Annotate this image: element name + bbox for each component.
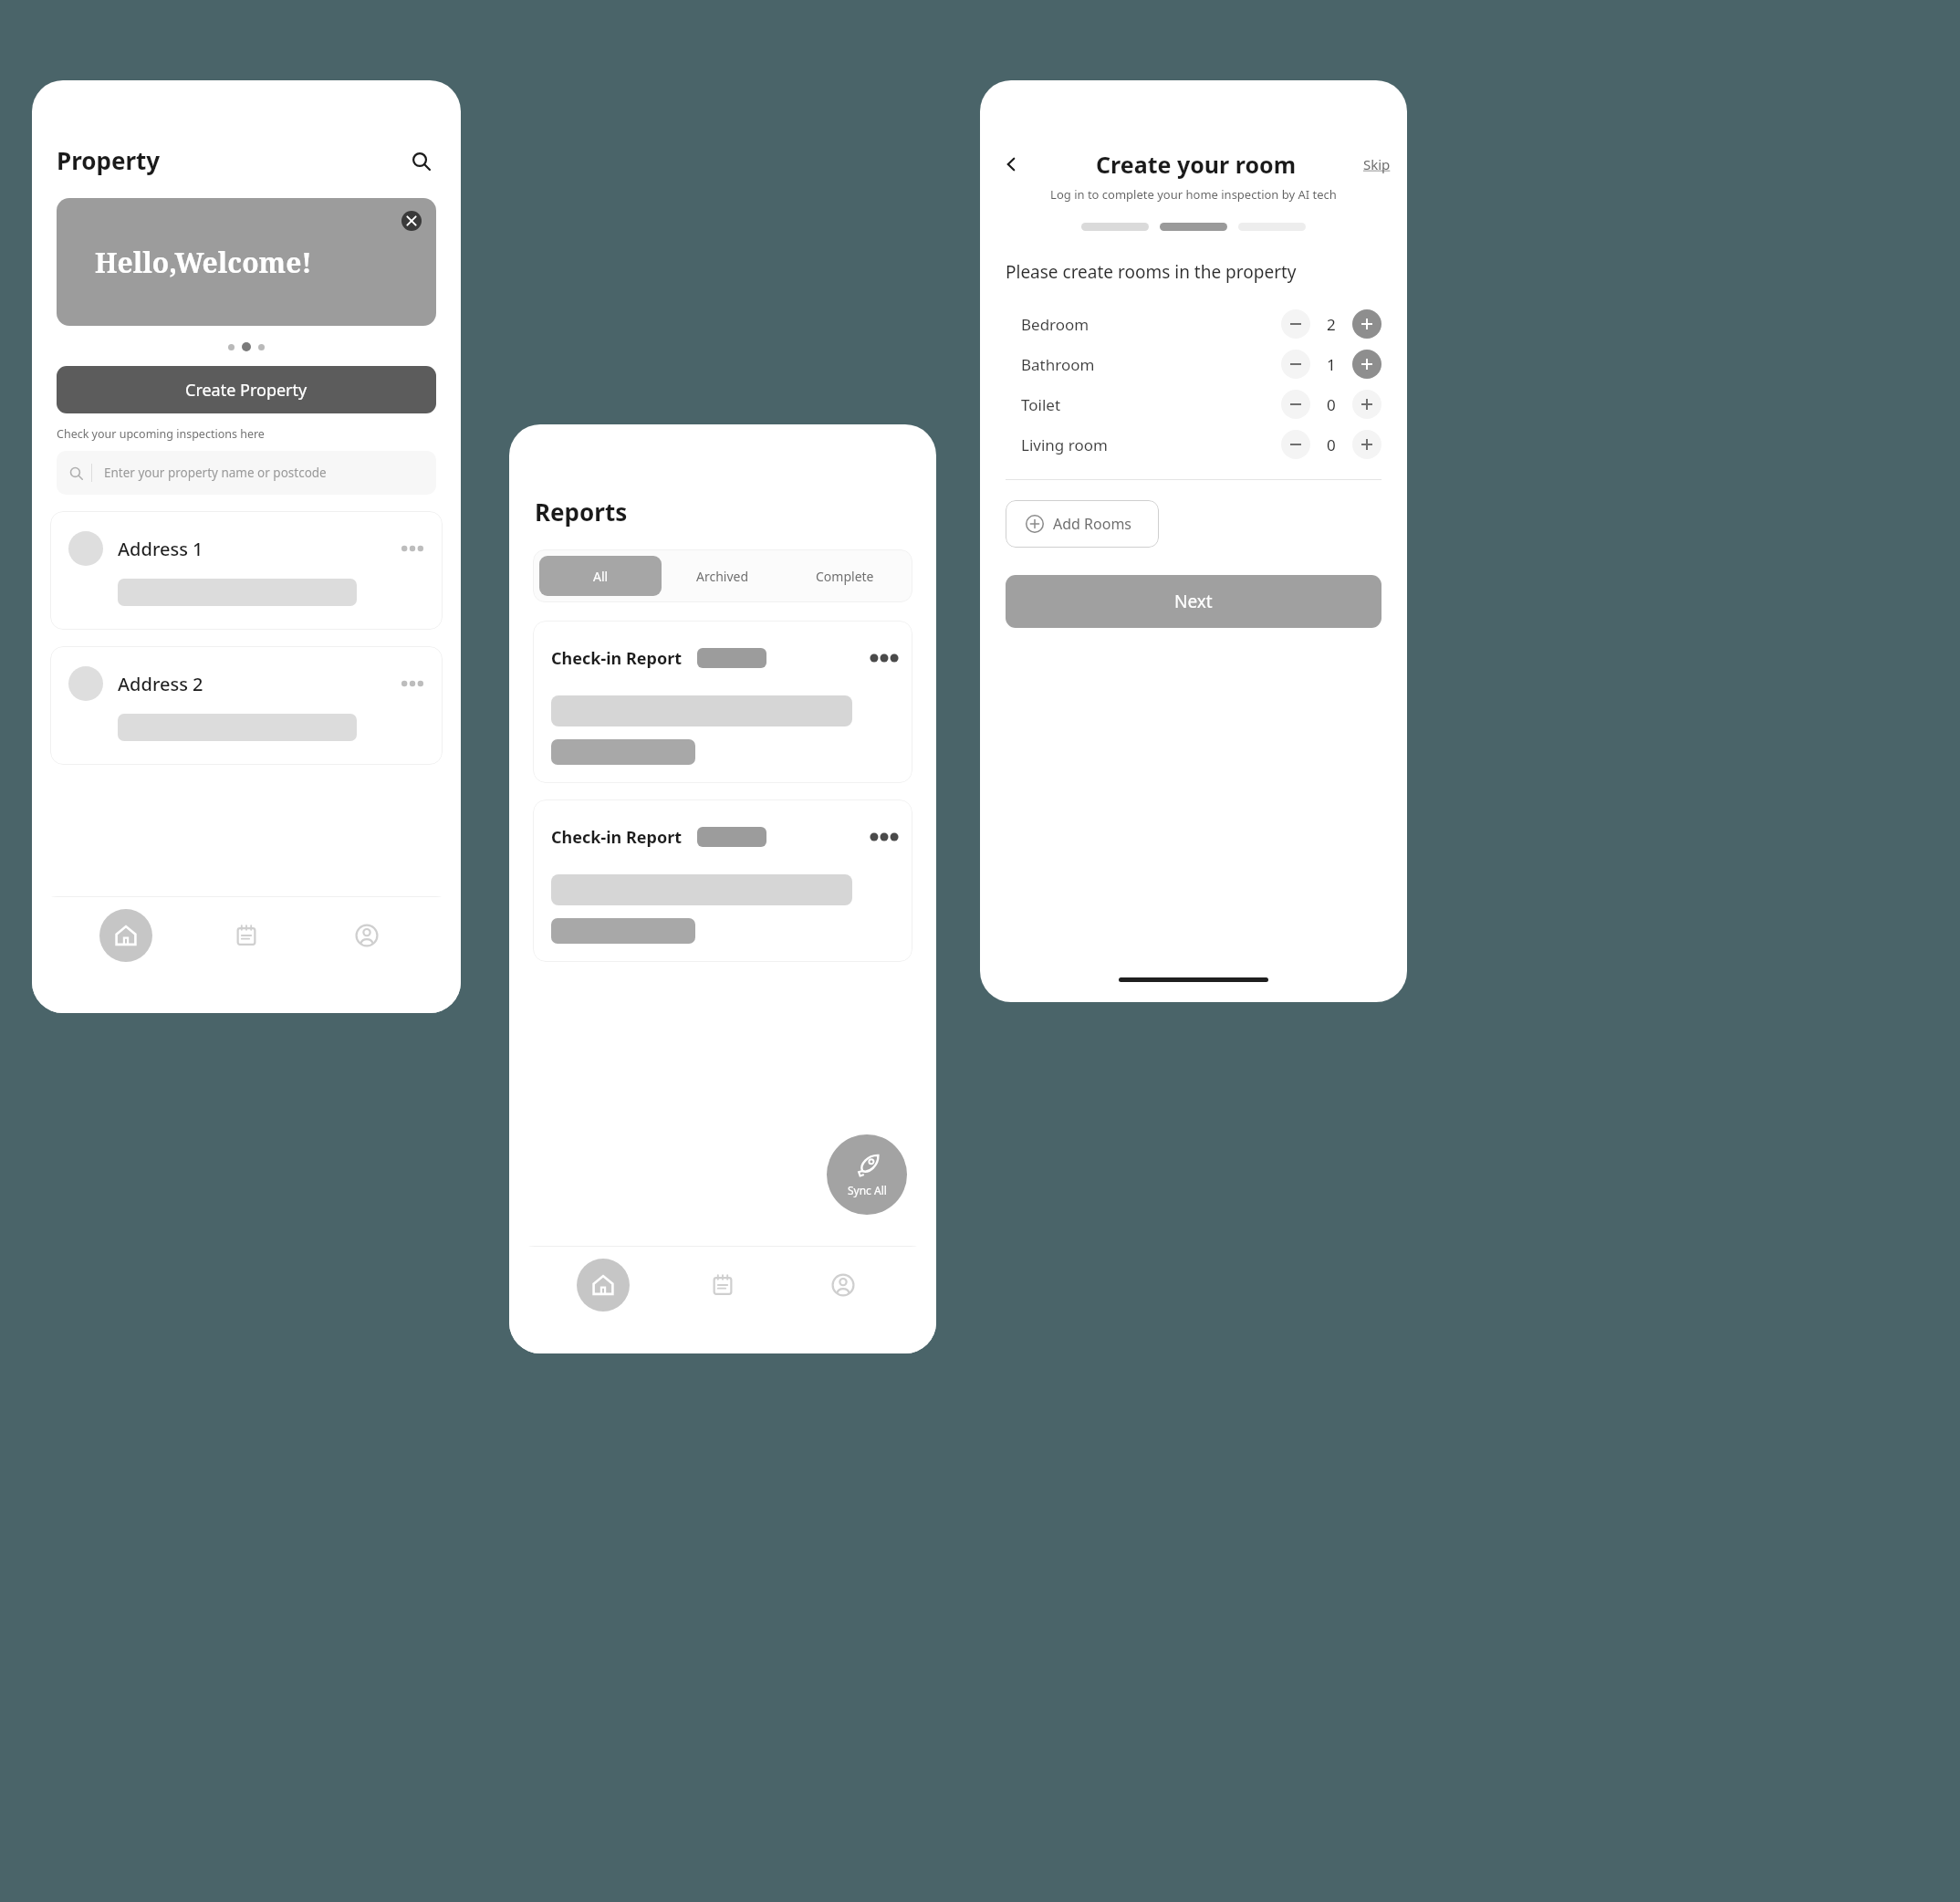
staticText: Bedroom [1021,314,1089,335]
staticText: All [593,568,609,585]
button[interactable]: Address 2 [50,646,443,765]
button[interactable]: Profile [340,909,393,962]
staticText: Check-in Report [551,826,683,849]
staticText: 0 [1327,394,1336,415]
staticText: Enter your property name or postcode [104,465,327,481]
staticText: Please create rooms in the property [1006,260,1297,284]
staticText: Bathroom [1021,354,1095,375]
staticText: Check your upcoming inspections here [57,426,265,442]
button[interactable]: Increase Bedroom [1352,309,1381,339]
staticText: 1 [1327,354,1336,375]
button[interactable]: Add Rooms [1006,500,1159,548]
button[interactable]: More options [399,535,426,562]
staticText: Sync All [848,1183,887,1197]
staticText: Living room [1021,434,1108,455]
button[interactable]: Profile [817,1259,870,1312]
staticText: Create your room [1096,149,1297,180]
button[interactable]: Complete [784,556,906,596]
button[interactable]: Increase Living room [1352,430,1381,459]
button[interactable]: Check-in Report [533,799,912,962]
staticText: Next [1174,590,1213,613]
staticText: Toilet [1021,394,1061,415]
staticText: Create Property [185,379,308,402]
staticText: Skip [1363,155,1391,173]
staticText: Hello,Welcome! [95,244,312,281]
staticText: Property [57,144,161,176]
staticText: Complete [816,568,874,585]
button[interactable]: Reports [696,1259,749,1312]
button[interactable]: Decrease Bathroom [1281,350,1310,379]
button[interactable]: Next [1006,575,1381,628]
button[interactable]: Dismiss [401,211,422,231]
button[interactable]: Increase Bathroom [1352,350,1381,379]
button[interactable]: Reports [220,909,273,962]
button[interactable]: Back [993,146,1029,183]
staticText: Check-in Report [551,647,683,670]
button[interactable]: Living room [980,424,1407,465]
button[interactable]: Increase Toilet [1352,390,1381,419]
button[interactable]: Address 1 [50,511,443,630]
button[interactable]: Enter your property name or postcode [57,451,436,495]
button[interactable]: Search [405,145,436,176]
button[interactable]: Decrease Living room [1281,430,1310,459]
button[interactable]: Home [99,909,152,962]
button[interactable]: Check-in Report [533,621,912,783]
button[interactable]: Hello,Welcome! [57,198,436,326]
staticText: Archived [696,568,749,585]
button[interactable]: Bathroom [980,344,1407,384]
staticText: 0 [1327,434,1336,455]
staticText: Reports [535,496,628,528]
staticText: Address 1 [118,537,203,561]
button[interactable]: Create Property [57,366,436,413]
button[interactable]: More options [871,823,898,851]
button[interactable]: More options [399,670,426,697]
staticText: Address 2 [118,672,203,696]
staticText: 2 [1327,314,1336,335]
button[interactable]: Skip [1363,155,1391,173]
button[interactable]: More options [871,644,898,672]
button[interactable]: Decrease Bedroom [1281,309,1310,339]
button[interactable]: Toilet [980,384,1407,424]
button[interactable]: Sync All [827,1134,907,1215]
button[interactable]: Home [577,1259,630,1312]
button[interactable]: Decrease Toilet [1281,390,1310,419]
staticText: Add Rooms [1053,514,1132,534]
staticText: Log in to complete your home inspection … [980,186,1407,203]
button[interactable]: Archived [662,556,784,596]
button[interactable]: All [539,556,662,596]
button[interactable]: Bedroom [980,304,1407,344]
